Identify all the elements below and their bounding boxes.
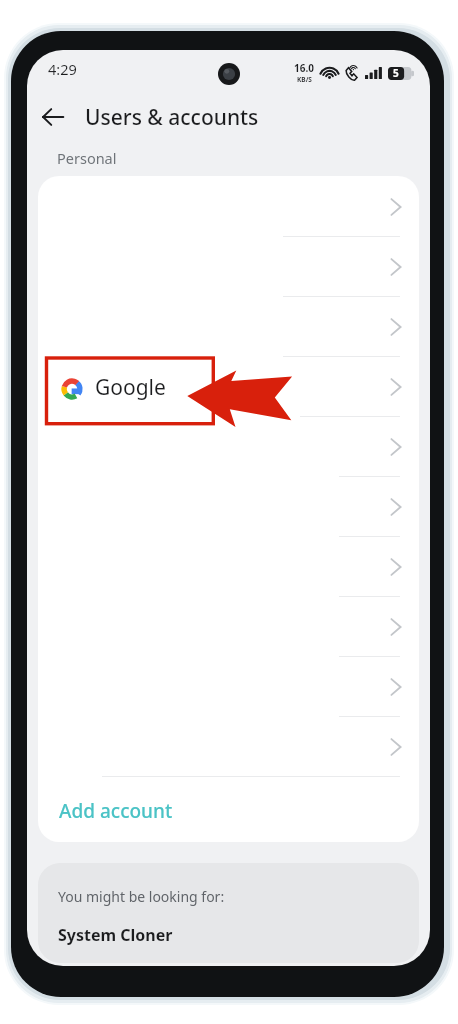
staticText: You might be looking for: <box>58 887 225 906</box>
button[interactable] <box>38 417 419 477</box>
staticText: Google <box>95 373 166 402</box>
button[interactable]: Back <box>35 99 71 135</box>
button[interactable]: Google <box>38 357 419 417</box>
staticText: Add account <box>59 798 173 824</box>
staticText: 4:29 <box>48 59 77 79</box>
staticText: Users & accounts <box>85 103 259 132</box>
staticText: 5 <box>393 66 399 80</box>
button[interactable] <box>38 297 419 357</box>
button[interactable] <box>38 717 419 777</box>
button[interactable]: You might be looking for: <box>38 863 419 963</box>
staticText: KB/S <box>297 75 312 84</box>
staticText: 16.0 <box>294 61 314 75</box>
staticText: Personal <box>57 148 117 168</box>
button[interactable] <box>38 177 419 237</box>
staticText: System Cloner <box>58 924 173 946</box>
button[interactable]: Add account <box>38 777 419 839</box>
